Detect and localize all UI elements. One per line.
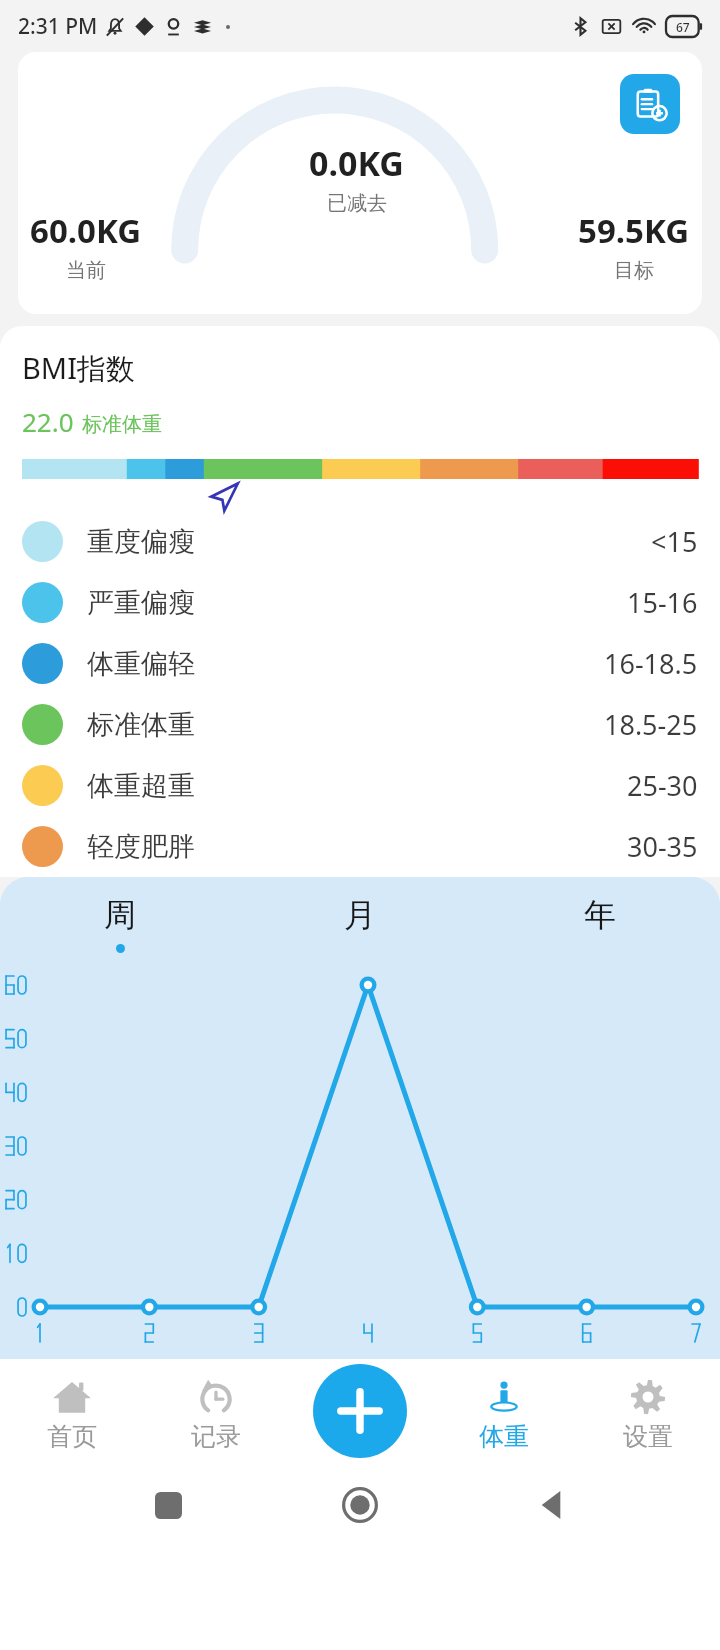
button[interactable]: 记录: [144, 1359, 288, 1467]
button[interactable]: 标准体重: [0, 694, 720, 755]
button[interactable]: Recents: [144, 1481, 192, 1529]
staticText: 重度偏瘦: [87, 525, 195, 559]
button[interactable]: Back: [528, 1481, 576, 1529]
staticText: 22.0: [22, 404, 74, 439]
button[interactable]: 严重偏瘦: [0, 572, 720, 633]
staticText: 当前: [66, 258, 106, 283]
button[interactable]: 设置: [576, 1359, 720, 1467]
staticText: 设置: [623, 1421, 673, 1452]
staticText: <15: [651, 523, 698, 560]
staticText: 18.5-25: [604, 706, 698, 743]
button[interactable]: 重度偏瘦: [0, 511, 720, 572]
staticText: 记录: [191, 1421, 241, 1452]
button[interactable]: 年: [480, 893, 720, 955]
staticText: BMI指数: [22, 348, 135, 388]
staticText: 30-35: [627, 828, 698, 865]
button[interactable]: Home: [336, 1481, 384, 1529]
staticText: 16-18.5: [604, 645, 698, 682]
staticText: 25-30: [627, 767, 698, 804]
staticText: 体重: [479, 1421, 529, 1452]
button[interactable]: Add record: [313, 1364, 407, 1458]
button[interactable]: 体重偏轻: [0, 633, 720, 694]
button[interactable]: 轻度肥胖: [0, 816, 720, 877]
staticText: 首页: [47, 1421, 97, 1452]
staticText: 严重偏瘦: [87, 586, 195, 620]
staticText: 目标: [614, 258, 654, 283]
button[interactable]: 周: [0, 893, 240, 955]
button[interactable]: 体重超重: [0, 755, 720, 816]
button[interactable]: 首页: [0, 1359, 144, 1467]
staticText: 2:31 PM: [18, 12, 98, 41]
staticText: 体重偏轻: [87, 647, 195, 681]
staticText: 60.0KG: [30, 208, 142, 253]
staticText: 0.0KG: [309, 140, 404, 186]
staticText: 月: [344, 895, 376, 935]
staticText: 67: [676, 19, 690, 35]
staticText: 轻度肥胖: [87, 830, 195, 864]
staticText: 年: [584, 895, 616, 935]
button[interactable]: 月: [240, 893, 480, 955]
button[interactable]: Add weight record: [620, 74, 680, 134]
staticText: 15-16: [627, 584, 698, 621]
staticText: 标准体重: [87, 708, 195, 742]
button[interactable]: 体重: [432, 1359, 576, 1467]
staticText: 体重超重: [87, 769, 195, 803]
staticText: 周: [104, 895, 136, 935]
staticText: 59.5KG: [578, 208, 690, 253]
staticText: 标准体重: [82, 412, 162, 437]
staticText: 已减去: [327, 191, 387, 216]
